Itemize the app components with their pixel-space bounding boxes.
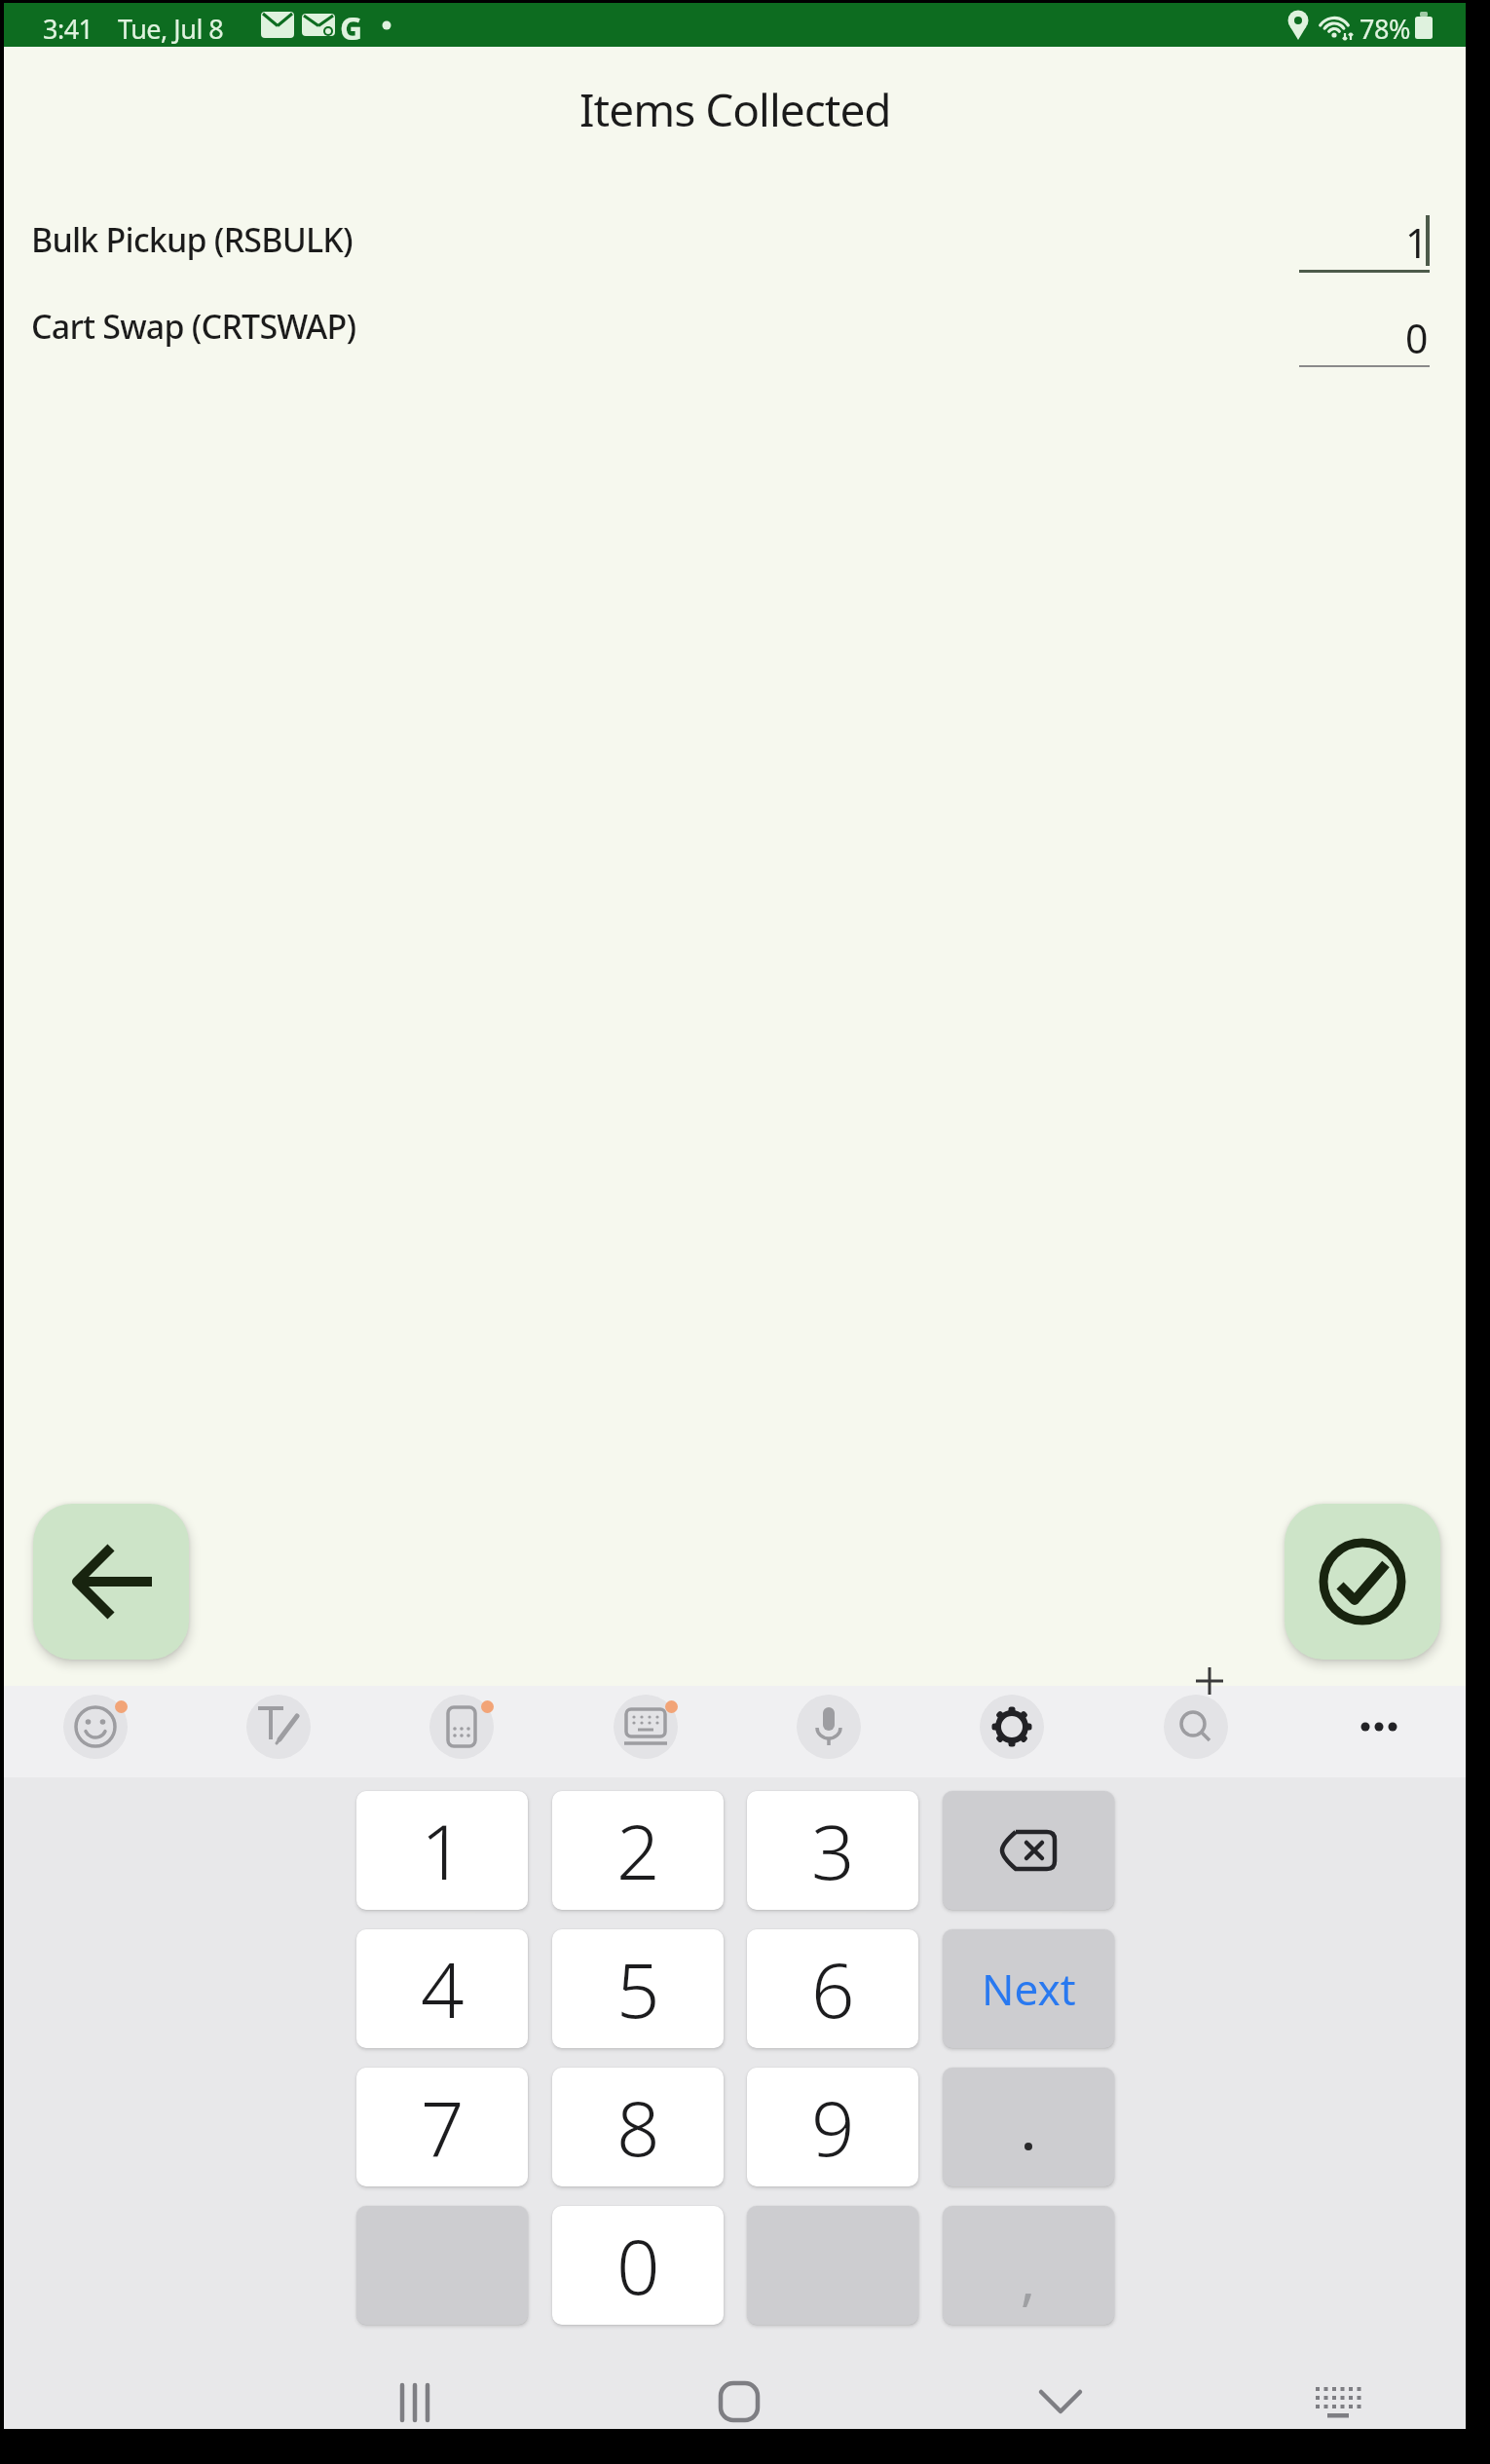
staticText: Cart Swap (CRTSWAP) [31,304,356,349]
button[interactable] [429,1695,494,1759]
staticText: G [340,7,363,50]
button[interactable]: 3 [747,1791,918,1910]
button[interactable] [943,2068,1114,2186]
button[interactable]: 0 [552,2206,724,2325]
button[interactable] [720,2382,759,2421]
staticText: 9 [811,2075,855,2179]
button[interactable]: 9 [747,2068,918,2186]
button[interactable] [33,1504,189,1660]
button[interactable] [246,1695,311,1759]
staticText: 6 [811,1937,855,2040]
button[interactable] [1039,2390,1082,2413]
staticText: 3:41 [43,11,93,47]
button[interactable]: 1 [356,1791,528,1910]
staticText: 1 [1405,215,1429,266]
button[interactable]: 2 [552,1791,724,1910]
staticText: 4 [421,1937,465,2040]
button[interactable]: 5 [552,1929,724,2048]
staticText: Items Collected [579,79,891,140]
button[interactable]: 8 [552,2068,724,2186]
button[interactable]: Next [943,1929,1114,2048]
staticText: Bulk Pickup (RSBULK) [31,217,353,262]
button[interactable] [797,1695,861,1759]
staticText: , [1021,2242,1036,2316]
staticText: 0 [1405,311,1429,361]
button[interactable]: 4 [356,1929,528,2048]
button[interactable] [398,2383,441,2422]
button[interactable]: 6 [747,1929,918,2048]
button[interactable]: 1 [1234,215,1429,266]
button[interactable] [63,1695,128,1759]
button[interactable] [943,1791,1114,1910]
staticText: 0 [616,2214,660,2317]
button[interactable] [1314,2385,1362,2420]
staticText: Next [982,1960,1076,2018]
staticText: 1 [421,1799,465,1902]
staticText: 78% [1360,11,1410,47]
button[interactable] [980,1695,1044,1759]
button[interactable] [1164,1695,1228,1759]
button[interactable] [1285,1504,1440,1660]
button[interactable]: 0 [1234,311,1429,361]
staticText: 8 [616,2075,660,2179]
button[interactable] [1347,1695,1411,1759]
staticText: 2 [616,1799,660,1902]
button[interactable] [614,1695,678,1759]
button[interactable]: 7 [356,2068,528,2186]
staticText: 7 [421,2075,465,2179]
staticText: Tue, Jul 8 [118,11,224,47]
staticText: 3 [811,1799,855,1902]
staticText: 5 [616,1937,660,2040]
